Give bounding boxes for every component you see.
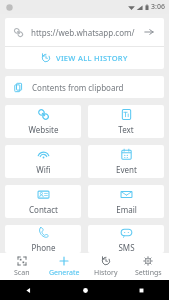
staticText: Contact [29,204,58,215]
staticText: Settings [135,268,162,278]
staticText: History [94,268,118,278]
button[interactable]: Home [57,280,113,300]
button[interactable]: Wifi [5,145,81,178]
staticText: Scan [14,268,30,278]
button[interactable]: Phone [5,225,81,253]
staticText: VIEW ALL HISTORY [56,53,128,63]
button[interactable]: Recent apps [113,280,169,300]
button[interactable]: Website [5,105,81,138]
staticText: Generate [49,268,80,278]
button[interactable]: Event [88,145,164,178]
staticText: Wifi [36,164,51,175]
staticText: Phone [31,242,56,253]
button[interactable]: Generate [43,253,85,280]
button[interactable]: Settings [127,253,169,280]
button[interactable]: SMS [88,225,164,253]
button[interactable]: Back [0,280,57,300]
button[interactable]: Contact [5,185,81,218]
button[interactable]: https://web.whatsapp.com/ [5,18,164,46]
staticText: Text [118,124,134,135]
button[interactable]: Email [88,185,164,218]
staticText: Event [116,164,137,175]
staticText: SMS [118,242,135,253]
staticText: https://web.whatsapp.com/ [31,27,142,38]
staticText: Contents from clipboard [32,82,124,93]
button[interactable]: Open link [142,25,156,39]
button[interactable]: Text [88,105,164,138]
button[interactable]: Scan [0,253,43,280]
staticText: Website [28,124,59,135]
button[interactable]: History [85,253,127,280]
button[interactable]: Contents from clipboard [5,76,164,98]
staticText: Email [116,204,137,215]
staticText: 3:06 [151,2,165,12]
button[interactable]: VIEW ALL HISTORY [5,47,164,69]
